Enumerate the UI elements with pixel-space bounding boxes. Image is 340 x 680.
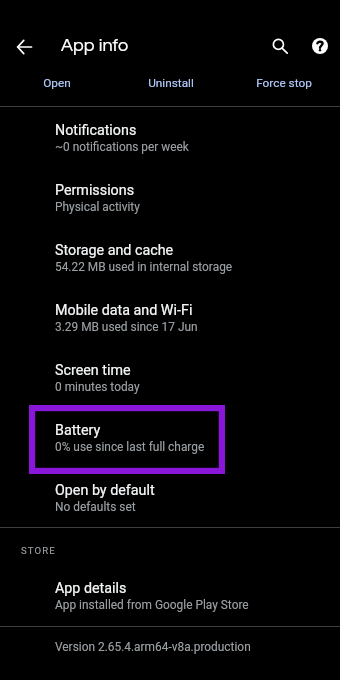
- staticText: Force stop: [256, 76, 312, 90]
- staticText: Uninstall: [148, 76, 194, 90]
- button[interactable]: Permissions: [0, 176, 340, 232]
- button[interactable]: Battery: [0, 416, 340, 472]
- staticText: Open by default: [55, 482, 155, 499]
- staticText: App installed from Google Play Store: [55, 598, 249, 612]
- button[interactable]: Back: [2, 25, 46, 69]
- staticText: Version 2.65.4.arm64-v8a.production: [55, 640, 251, 654]
- staticText: ~0 notifications per week: [55, 140, 189, 154]
- staticText: 3.29 MB used since 17 Jun: [55, 320, 198, 334]
- staticText: STORE: [21, 545, 56, 556]
- button[interactable]: Mobile data and Wi-Fi: [0, 296, 340, 352]
- staticText: Open: [43, 76, 71, 90]
- staticText: Physical activity: [55, 200, 140, 214]
- button[interactable]: Open by default: [0, 476, 340, 532]
- staticText: Mobile data and Wi-Fi: [55, 302, 193, 319]
- staticText: Battery: [55, 422, 101, 439]
- button[interactable]: Notifications: [0, 116, 340, 172]
- button[interactable]: Screen time: [0, 356, 340, 412]
- button[interactable]: Search: [258, 24, 302, 68]
- staticText: Permissions: [55, 182, 135, 199]
- staticText: 0 minutes today: [55, 380, 140, 394]
- button[interactable]: Open: [0, 68, 114, 98]
- staticText: 0% use since last full charge: [55, 440, 205, 454]
- staticText: 54.22 MB used in internal storage: [55, 260, 233, 274]
- button[interactable]: App details: [0, 574, 340, 630]
- button[interactable]: Help: [298, 24, 340, 68]
- staticText: No defaults set: [55, 500, 136, 514]
- button[interactable]: Uninstall: [114, 68, 227, 98]
- button[interactable]: Force stop: [227, 68, 340, 98]
- staticText: Notifications: [55, 122, 137, 139]
- staticText: Storage and cache: [55, 242, 174, 259]
- staticText: App details: [55, 580, 127, 597]
- button[interactable]: Storage and cache: [0, 236, 340, 292]
- staticText: Screen time: [55, 362, 131, 379]
- staticText: App info: [61, 36, 129, 55]
